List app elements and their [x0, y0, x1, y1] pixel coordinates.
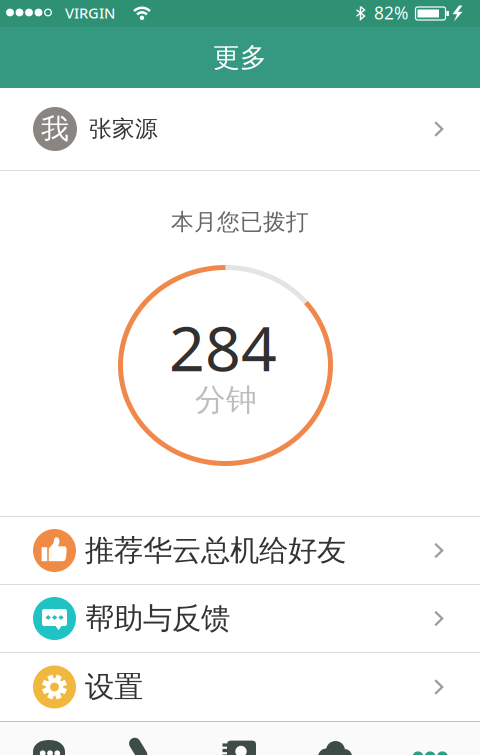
staticText: 张家源 — [89, 115, 158, 143]
staticText: VIRGIN — [65, 3, 115, 22]
staticText: 本月您已拨打 — [171, 208, 309, 236]
button[interactable]: 电话 — [96, 721, 192, 755]
staticText: 推荐华云总机给好友 — [85, 532, 346, 568]
staticText: 帮助与反馈 — [85, 600, 230, 636]
staticText: 我 — [41, 112, 69, 146]
staticText: 分钟 — [195, 381, 257, 419]
staticText: 更多 — [213, 41, 267, 74]
button[interactable]: 通讯录 — [192, 721, 288, 755]
button[interactable]: 帮助与反馈 — [0, 585, 480, 652]
button[interactable]: 消息 — [288, 721, 384, 755]
staticText: 82% — [374, 1, 408, 24]
button[interactable]: 拨号 — [0, 721, 96, 755]
button[interactable]: 更多 — [384, 721, 480, 755]
button[interactable]: 我 — [0, 88, 480, 170]
staticText: 284 — [169, 305, 277, 389]
button[interactable]: 设置 — [0, 653, 480, 721]
staticText: 设置 — [85, 669, 143, 705]
button[interactable]: 推荐华云总机给好友 — [0, 517, 480, 584]
